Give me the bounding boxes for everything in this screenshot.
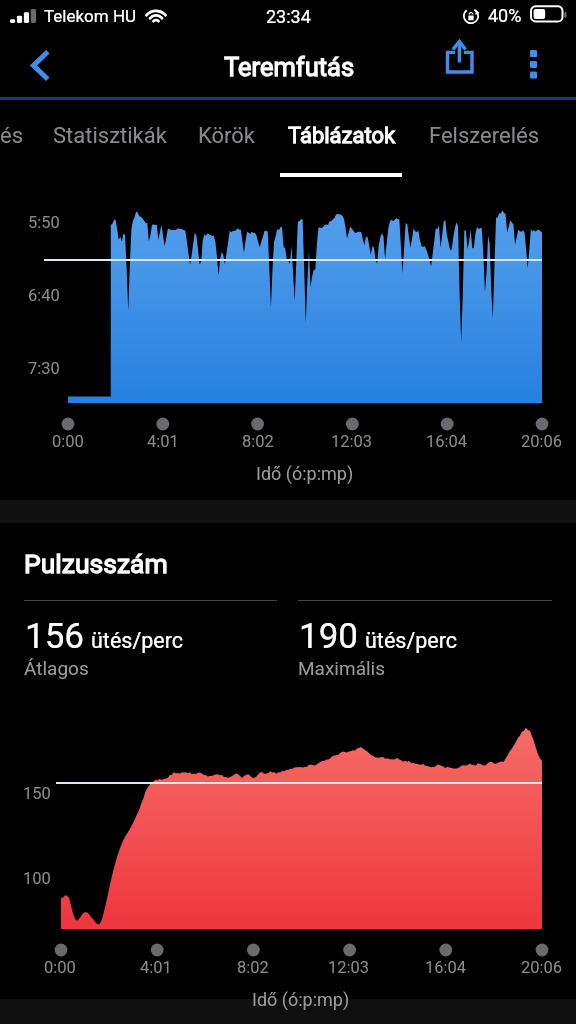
button[interactable]: Back bbox=[0, 36, 66, 97]
staticText: 190 bbox=[299, 616, 359, 657]
staticText: 100 bbox=[23, 869, 51, 888]
staticText: 23:34 bbox=[266, 6, 311, 27]
button[interactable]: Táblázatok bbox=[268, 100, 415, 178]
staticText: ütés/perc bbox=[365, 628, 458, 653]
staticText: 12:03 bbox=[331, 432, 373, 451]
staticText: 16:04 bbox=[425, 958, 467, 977]
staticText: 4:01 bbox=[147, 432, 179, 451]
staticText: Telekom HU bbox=[44, 6, 137, 26]
staticText: 4:01 bbox=[140, 958, 172, 977]
staticText: 12:03 bbox=[328, 958, 370, 977]
button[interactable]: Felszerelés bbox=[412, 100, 556, 178]
staticText: 8:02 bbox=[237, 958, 269, 977]
staticText: 8:02 bbox=[242, 432, 274, 451]
staticText: 6:40 bbox=[28, 286, 60, 305]
button[interactable]: More options bbox=[504, 36, 564, 97]
staticText: 40% bbox=[488, 5, 522, 26]
staticText: Pulzusszám bbox=[24, 548, 168, 579]
button[interactable]: Share bbox=[426, 36, 492, 97]
staticText: 156 bbox=[25, 616, 85, 657]
staticText: 7:30 bbox=[28, 359, 60, 378]
staticText: 150 bbox=[23, 784, 51, 803]
staticText: Áttekintés bbox=[0, 123, 24, 149]
staticText: Átlagos bbox=[24, 657, 89, 679]
button[interactable]: Körök bbox=[183, 100, 269, 178]
staticText: Idő (ó:p:mp) bbox=[252, 989, 350, 1010]
button[interactable]: Statisztikák bbox=[37, 100, 182, 178]
staticText: 20:06 bbox=[521, 432, 563, 451]
staticText: Táblázatok bbox=[288, 123, 396, 149]
staticText: Idő (ó:p:mp) bbox=[256, 463, 354, 484]
staticText: 20:06 bbox=[521, 958, 563, 977]
staticText: ütés/perc bbox=[91, 628, 184, 653]
staticText: Teremfutás bbox=[224, 52, 355, 82]
staticText: 0:00 bbox=[44, 958, 76, 977]
staticText: 16:04 bbox=[426, 432, 468, 451]
staticText: Statisztikák bbox=[53, 123, 167, 149]
button[interactable]: Áttekintés bbox=[0, 100, 24, 178]
staticText: 5:50 bbox=[28, 213, 60, 232]
staticText: Maximális bbox=[298, 657, 386, 679]
staticText: 0:00 bbox=[52, 432, 84, 451]
staticText: Körök bbox=[198, 123, 255, 149]
staticText: Felszerelés bbox=[429, 123, 539, 149]
